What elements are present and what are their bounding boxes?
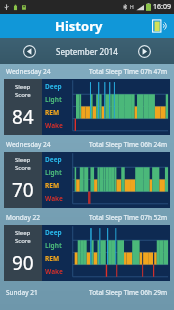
staticText: Total Sleep Time 07h 52m xyxy=(89,213,168,222)
staticText: 16:09 xyxy=(153,2,171,12)
staticText: September 2014 xyxy=(56,46,118,57)
staticText: H xyxy=(130,4,134,11)
staticText: Wake xyxy=(45,121,63,130)
staticText: Deep xyxy=(45,228,62,237)
staticText: REM xyxy=(45,181,60,190)
staticText: Deep xyxy=(45,82,62,91)
staticText: Score xyxy=(15,237,31,245)
button[interactable]: Sunday 21 xyxy=(0,283,174,301)
staticText: Sleep xyxy=(15,83,31,91)
button[interactable]: Wednesday 24 xyxy=(0,137,174,210)
staticText: Wake xyxy=(45,194,63,203)
staticText: Total Sleep Time 07h 47m xyxy=(89,67,168,76)
staticText: 84 xyxy=(12,104,34,130)
staticText: Wake xyxy=(45,267,63,276)
staticText: 70 xyxy=(12,177,34,203)
staticText: 90 xyxy=(12,250,34,276)
staticText: Sunday 21 xyxy=(6,288,38,297)
staticText: Light xyxy=(45,241,62,250)
button[interactable]: Monday 22 xyxy=(0,210,174,283)
staticText: REM xyxy=(45,254,60,263)
staticText: REM xyxy=(45,108,60,117)
staticText: Wednesday 24 xyxy=(6,67,51,76)
button[interactable]: Wednesday 24 xyxy=(0,64,174,137)
staticText: Wednesday 24 xyxy=(6,140,51,149)
staticText: Sleep xyxy=(15,229,31,237)
button[interactable]: Next month xyxy=(137,44,152,59)
staticText: Sleep xyxy=(15,156,31,164)
staticText: Deep xyxy=(45,155,62,164)
staticText: Light xyxy=(45,168,62,177)
staticText: Score xyxy=(15,164,31,172)
staticText: Score xyxy=(15,91,31,99)
staticText: Total Sleep Time 06h 29m xyxy=(89,288,168,297)
staticText: History xyxy=(55,17,103,35)
button[interactable]: Previous month xyxy=(22,44,37,59)
staticText: Light xyxy=(45,95,62,104)
button[interactable]: Sound settings xyxy=(149,16,169,36)
staticText: Total Sleep Time 06h 24m xyxy=(89,140,168,149)
staticText: Monday 22 xyxy=(6,213,40,222)
